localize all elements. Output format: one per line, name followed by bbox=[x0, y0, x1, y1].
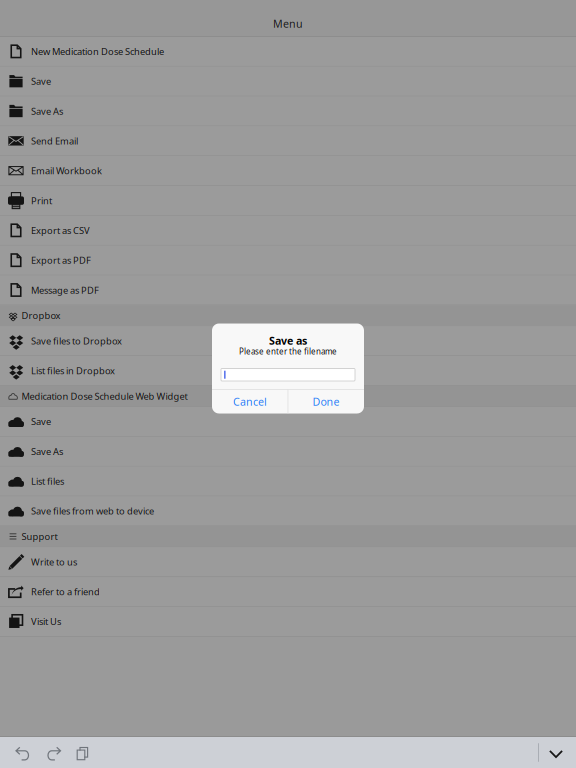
button[interactable]: List files bbox=[0, 467, 576, 496]
button[interactable]: Save bbox=[0, 67, 576, 96]
staticText: Message as PDF bbox=[31, 284, 99, 296]
staticText: Email Workbook bbox=[31, 164, 102, 177]
staticText: Export as CSV bbox=[31, 224, 90, 236]
staticText: Save As bbox=[31, 445, 63, 457]
staticText: Print bbox=[31, 194, 52, 207]
staticText: Cancel bbox=[233, 394, 267, 409]
staticText: Done bbox=[312, 394, 339, 409]
button[interactable]: Export as PDF bbox=[0, 246, 576, 275]
button[interactable]: Save As bbox=[0, 96, 576, 126]
staticText: List files bbox=[31, 475, 64, 487]
staticText: Send Email bbox=[31, 135, 78, 147]
staticText: Support bbox=[21, 530, 57, 543]
button[interactable]: Hide keyboard bbox=[540, 737, 572, 768]
button[interactable]: Send Email bbox=[0, 126, 576, 156]
button[interactable]: Email Workbook bbox=[0, 156, 576, 186]
staticText: Save files to Dropbox bbox=[31, 335, 122, 347]
staticText: Menu bbox=[273, 16, 303, 31]
button[interactable]: Write to us bbox=[0, 547, 576, 577]
staticText: Refer to a friend bbox=[31, 585, 100, 598]
button[interactable]: Message as PDF bbox=[0, 275, 576, 305]
button[interactable]: Export as CSV bbox=[0, 216, 576, 246]
button[interactable]: Save files from web to device bbox=[0, 496, 576, 526]
button[interactable]: Redo bbox=[38, 737, 69, 768]
button[interactable]: Undo bbox=[7, 737, 38, 768]
staticText: Dropbox bbox=[21, 309, 60, 322]
button[interactable]: Cancel bbox=[212, 389, 288, 413]
staticText: Save bbox=[31, 415, 51, 428]
staticText: Save bbox=[31, 75, 51, 87]
staticText: Save As bbox=[31, 105, 63, 117]
staticText: Visit Us bbox=[31, 615, 61, 628]
button[interactable]: List files in Dropbox bbox=[0, 356, 576, 386]
staticText: Medication Dose Schedule Web Widget bbox=[21, 390, 187, 402]
button[interactable]: New Medication Dose Schedule bbox=[0, 37, 576, 67]
button[interactable]: Print bbox=[0, 186, 576, 216]
staticText: Please enter the filename bbox=[239, 346, 337, 357]
button[interactable]: Visit Us bbox=[0, 607, 576, 637]
staticText: List files in Dropbox bbox=[31, 364, 115, 377]
button[interactable]: Save bbox=[0, 407, 576, 437]
staticText: Save files from web to device bbox=[31, 505, 154, 517]
staticText: Save as bbox=[269, 333, 307, 348]
staticText: Write to us bbox=[31, 556, 77, 568]
staticText: New Medication Dose Schedule bbox=[31, 45, 164, 58]
button[interactable]: Refer to a friend bbox=[0, 577, 576, 607]
button[interactable]: Done bbox=[288, 389, 364, 413]
staticText: Export as PDF bbox=[31, 254, 91, 266]
button[interactable]: Save As bbox=[0, 437, 576, 467]
button[interactable]: Duplicate bbox=[67, 737, 98, 768]
button[interactable]: Save files to Dropbox bbox=[0, 326, 576, 356]
